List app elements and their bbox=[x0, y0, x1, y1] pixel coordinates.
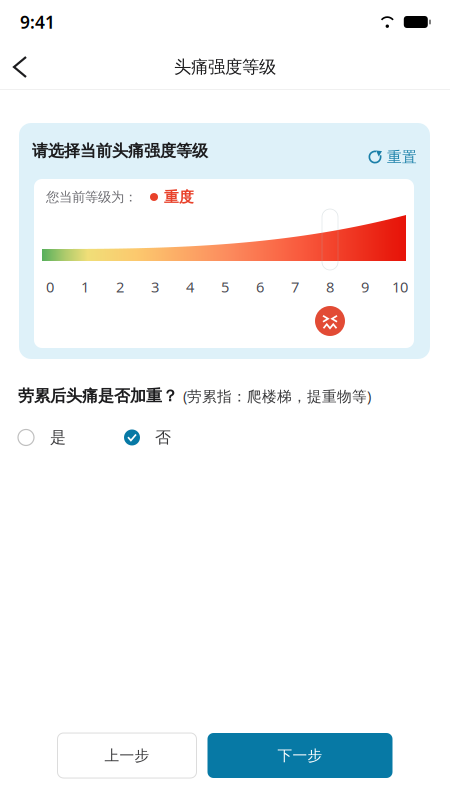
button[interactable]: 重置 bbox=[368, 148, 417, 166]
staticText: 上一步 bbox=[104, 746, 149, 764]
staticText: 2 bbox=[116, 277, 124, 296]
button[interactable]: Back bbox=[0, 47, 42, 87]
staticText: 劳累后头痛是否加重？ bbox=[18, 386, 178, 406]
staticText: 7 bbox=[291, 277, 299, 296]
staticText: 请选择当前头痛强度等级 bbox=[32, 141, 208, 161]
staticText: 是 bbox=[50, 428, 66, 447]
staticText: 重置 bbox=[387, 148, 417, 166]
staticText: 8 bbox=[326, 277, 334, 296]
staticText: 10 bbox=[392, 277, 408, 296]
button[interactable]: 否 bbox=[124, 428, 171, 447]
staticText: 下一步 bbox=[277, 746, 322, 764]
staticText: 1 bbox=[81, 277, 89, 296]
staticText: 9 bbox=[361, 277, 369, 296]
staticText: 4 bbox=[186, 277, 194, 296]
staticText: (劳累指：爬楼梯，提重物等) bbox=[183, 386, 371, 406]
button[interactable]: 下一步 bbox=[207, 733, 392, 778]
staticText: 5 bbox=[221, 277, 229, 296]
staticText: 3 bbox=[151, 277, 159, 296]
button[interactable]: 是 bbox=[18, 428, 66, 447]
staticText: 9:41 bbox=[20, 10, 55, 33]
button[interactable]: 上一步 bbox=[57, 733, 196, 778]
staticText: 头痛强度等级 bbox=[174, 56, 276, 78]
staticText: 0 bbox=[46, 277, 54, 296]
staticText: 您当前等级为： bbox=[46, 189, 137, 205]
staticText: 重度 bbox=[164, 188, 194, 206]
staticText: 否 bbox=[155, 428, 171, 447]
staticText: 6 bbox=[256, 277, 264, 296]
